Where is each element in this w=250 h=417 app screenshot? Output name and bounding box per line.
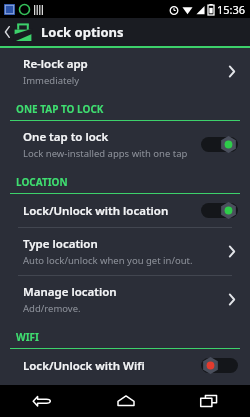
button[interactable]: Lock/Unlock with Wifi — [0, 349, 250, 382]
button[interactable]: Toggle on — [201, 136, 238, 153]
staticText: Auto lock/unlock when you get in/out. — [23, 254, 193, 267]
staticText: Lock/Unlock with location — [23, 203, 169, 219]
staticText: Add/remove. — [23, 302, 81, 315]
staticText: Immediately — [23, 74, 80, 87]
staticText: LOCATION — [16, 175, 68, 189]
button[interactable]: Toggle off — [201, 357, 238, 374]
button[interactable]: Recent apps — [167, 385, 250, 417]
staticText: Lock new-installed apps with one tap — [23, 147, 188, 160]
button[interactable]: Toggle on — [201, 202, 238, 219]
staticText: 15:36 — [217, 2, 246, 17]
button[interactable]: Lock/Unlock with location — [0, 194, 250, 227]
staticText: One tap to lock — [23, 129, 109, 145]
button[interactable]: Type location — [0, 228, 250, 275]
button[interactable]: Back — [0, 385, 84, 417]
staticText: Re-lock app — [23, 56, 88, 72]
button[interactable]: Manage location — [0, 276, 250, 323]
button[interactable]: Home — [84, 385, 167, 417]
staticText: Lock/Unlock with Wifi — [23, 358, 145, 374]
button[interactable]: One tap to lock — [0, 121, 250, 168]
staticText: Type location — [23, 236, 98, 252]
staticText: Manage location — [23, 284, 117, 300]
button[interactable]: Re-lock app — [0, 48, 250, 95]
staticText: Lock options — [41, 23, 124, 41]
staticText: ONE TAP TO LOCK — [16, 102, 104, 116]
button[interactable]: Back — [0, 22, 35, 42]
staticText: WIFI — [16, 330, 39, 344]
